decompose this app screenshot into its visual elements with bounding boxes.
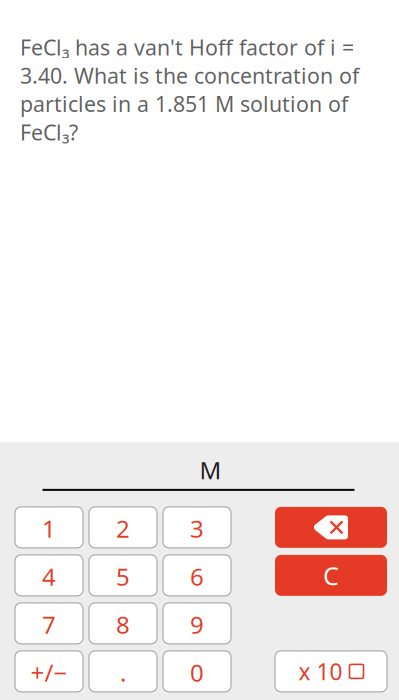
button[interactable]: 9 xyxy=(163,603,231,644)
button[interactable]: 4 xyxy=(15,555,83,596)
staticText: 3 xyxy=(190,512,204,544)
button[interactable]: 0 xyxy=(163,651,231,692)
staticText: . xyxy=(120,656,126,688)
button[interactable]: . xyxy=(89,651,157,692)
button[interactable]: 6 xyxy=(163,555,231,596)
button[interactable]: Delete xyxy=(275,507,387,548)
staticText: 1 xyxy=(42,512,56,544)
button[interactable]: C xyxy=(275,555,387,596)
staticText: 4 xyxy=(42,560,56,592)
staticText: 2 xyxy=(116,512,130,544)
button[interactable]: 8 xyxy=(89,603,157,644)
button[interactable]: +/− xyxy=(15,651,83,692)
button[interactable]: 3 xyxy=(163,507,231,548)
staticText: 9 xyxy=(190,608,204,640)
button[interactable]: 2 xyxy=(89,507,157,548)
staticText: x 10 xyxy=(298,656,342,686)
button[interactable]: x 10 xyxy=(275,651,387,692)
staticText: FeCl₃ has a van't Hoff factor of i = 3.4… xyxy=(20,33,359,146)
button[interactable]: 7 xyxy=(15,603,83,644)
staticText: 5 xyxy=(116,560,130,592)
button[interactable]: 5 xyxy=(89,555,157,596)
staticText: 0 xyxy=(190,656,204,688)
staticText: C xyxy=(323,559,339,592)
staticText: 6 xyxy=(190,560,204,592)
staticText: M xyxy=(199,454,221,486)
staticText: 7 xyxy=(42,608,56,640)
staticText: +/− xyxy=(30,656,67,688)
staticText: 8 xyxy=(116,608,130,640)
button[interactable]: 1 xyxy=(15,507,83,548)
